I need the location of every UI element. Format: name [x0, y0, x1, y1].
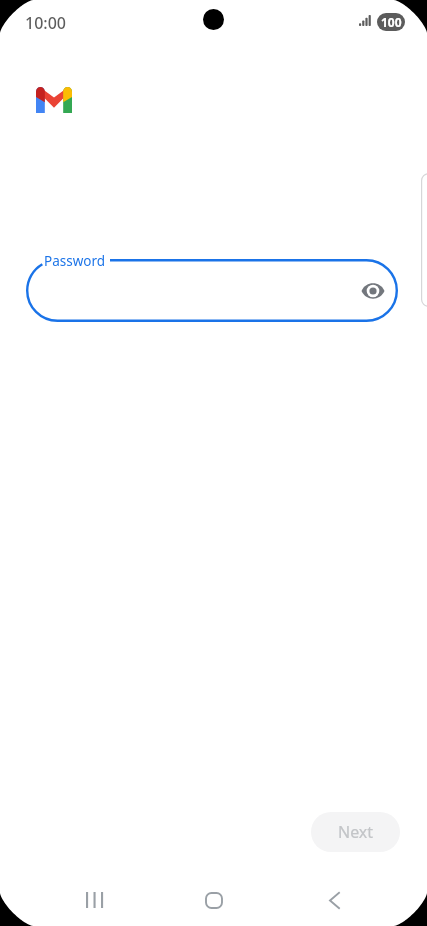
button[interactable]: Recent apps: [66, 874, 123, 926]
staticText: Password: [44, 252, 106, 270]
button[interactable]: Home: [185, 874, 242, 926]
staticText: Next: [338, 821, 374, 843]
button[interactable]: Next: [311, 812, 400, 852]
button[interactable]: Show password: [353, 271, 393, 311]
staticText: 10:00: [25, 12, 66, 34]
staticText: 100: [381, 14, 402, 30]
button[interactable]: Back: [306, 874, 363, 926]
